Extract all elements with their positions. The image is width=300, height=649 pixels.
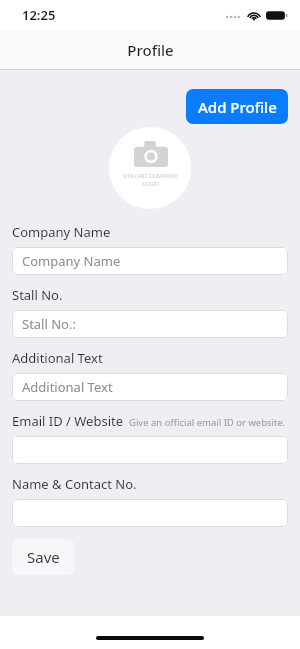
button[interactable]: Stall No.:	[12, 310, 288, 338]
button[interactable]: Save	[12, 539, 74, 575]
staticText: Add Profile	[198, 97, 277, 117]
staticText: Email ID / Website	[12, 412, 124, 430]
staticText: Stall No.:	[22, 315, 76, 333]
staticText: Profile	[127, 40, 174, 60]
staticText: Save	[27, 547, 60, 567]
staticText: 12:25	[22, 6, 56, 24]
button[interactable]	[12, 436, 288, 464]
staticText: Additional Text	[12, 349, 103, 367]
button[interactable]: Upload company logo	[109, 127, 191, 209]
button[interactable]: Additional Text	[12, 373, 288, 401]
button[interactable]: Company Name	[12, 247, 288, 275]
button[interactable]	[12, 499, 288, 527]
staticText: Company Name	[22, 252, 121, 270]
staticText: Additional Text	[22, 378, 113, 396]
staticText: Company Name	[12, 223, 111, 241]
staticText: Give an official email ID or website.	[129, 416, 286, 429]
button[interactable]: Add Profile	[186, 89, 288, 124]
staticText: LOGO	[142, 180, 159, 188]
staticText: UPLOAD COMPANY	[123, 172, 178, 180]
staticText: Name & Contact No.	[12, 475, 137, 493]
staticText: Stall No.	[12, 286, 63, 304]
